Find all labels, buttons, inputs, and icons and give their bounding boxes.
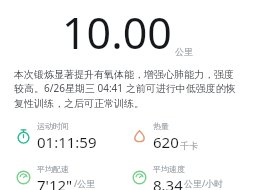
button[interactable]: 热量: [132, 121, 198, 152]
staticText: 千卡: [180, 140, 198, 151]
staticText: /公里: [74, 177, 96, 189]
staticText: 公里: [175, 46, 193, 57]
staticText: 平均配速: [37, 164, 69, 174]
button[interactable]: 平均配速: [16, 164, 96, 190]
other: 运动时间: [16, 129, 31, 144]
other: 平均速度: [132, 170, 147, 185]
staticText: 7'12": [37, 175, 73, 190]
staticText: 平均速度: [153, 164, 185, 174]
other: 平均配速: [16, 170, 31, 185]
staticText: 运动时间: [37, 121, 69, 131]
staticText: 本次锻炼显著提升有氧体能，增强心肺能力，强度较高。6/26星期三 04:41 之…: [14, 68, 240, 110]
staticText: 8.34: [153, 175, 183, 190]
other: 热量: [132, 129, 147, 144]
staticText: 公里/小时: [184, 177, 224, 189]
staticText: 10.00: [62, 3, 172, 62]
staticText: 热量: [153, 121, 169, 131]
staticText: 620: [153, 132, 179, 152]
button[interactable]: 运动时间: [16, 121, 97, 152]
button[interactable]: 平均速度: [132, 164, 224, 190]
staticText: 01:11:59: [37, 132, 97, 152]
